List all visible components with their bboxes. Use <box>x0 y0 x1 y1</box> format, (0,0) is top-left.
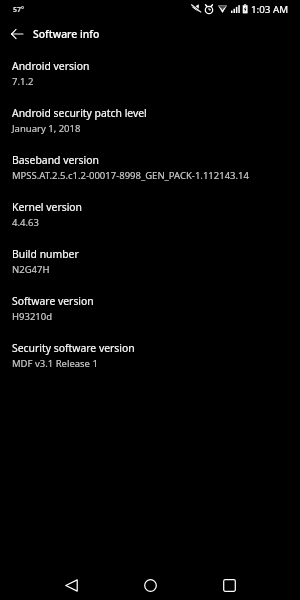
staticText: Build number <box>12 247 79 261</box>
staticText: Android security patch level <box>12 106 147 120</box>
button[interactable]: Baseband version <box>0 153 300 200</box>
button[interactable]: Security software version <box>0 341 300 388</box>
staticText: January 1, 2018 <box>12 122 81 135</box>
staticText: 7.1.2 <box>12 75 34 88</box>
staticText: Android version <box>12 59 90 73</box>
staticText: Software version <box>12 294 94 308</box>
button[interactable]: Software version <box>0 294 300 341</box>
button[interactable]: Back <box>51 565 91 600</box>
button[interactable]: Back <box>5 22 29 46</box>
button[interactable]: Android version <box>0 59 300 106</box>
staticText: MDF v3.1 Release 1 <box>12 357 98 370</box>
button[interactable]: Home <box>130 565 170 600</box>
staticText: Software info <box>33 27 100 41</box>
button[interactable]: Kernel version <box>0 200 300 247</box>
staticText: N2G47H <box>12 263 50 276</box>
button[interactable]: Build number <box>0 247 300 294</box>
staticText: Security software version <box>12 341 135 355</box>
staticText: Baseband version <box>12 153 99 167</box>
staticText: H93210d <box>12 310 53 323</box>
staticText: 1:03 AM <box>251 3 289 16</box>
staticText: Kernel version <box>12 200 83 214</box>
staticText: 57° <box>13 5 24 15</box>
button[interactable]: Recent apps <box>209 565 249 600</box>
staticText: 4.4.63 <box>12 216 39 229</box>
staticText: MPSS.AT.2.5.c1.2-00017-8998_GEN_PACK-1.1… <box>12 169 249 182</box>
button[interactable]: Android security patch level <box>0 106 300 153</box>
